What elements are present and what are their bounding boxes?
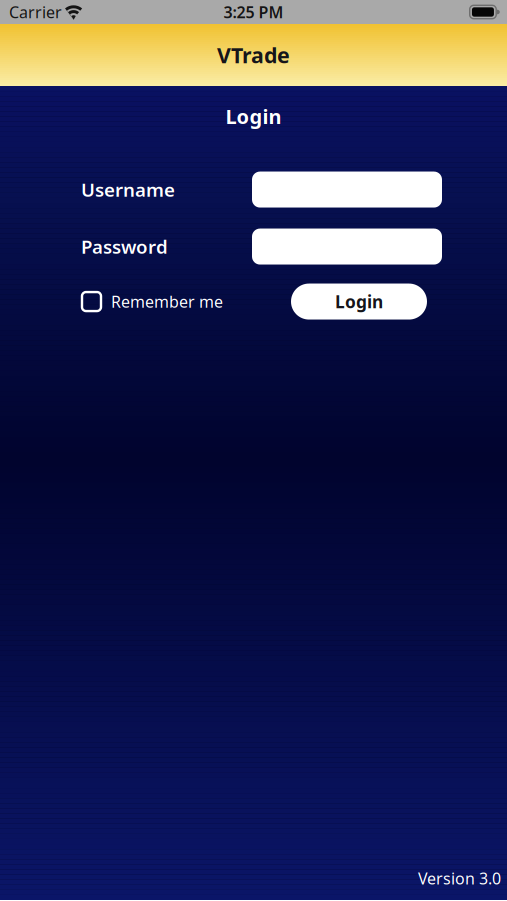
- staticText: Password: [81, 234, 168, 259]
- staticText: Carrier: [9, 1, 62, 23]
- staticText: Login: [335, 290, 383, 313]
- button[interactable]: Username: [252, 172, 442, 208]
- staticText: Login: [225, 103, 281, 130]
- button[interactable]: Password: [252, 229, 442, 265]
- staticText: 3:25 PM: [223, 1, 283, 23]
- staticText: Username: [81, 177, 175, 202]
- staticText: Remember me: [111, 291, 223, 312]
- staticText: VTrade: [217, 41, 290, 69]
- button[interactable]: Remember me: [82, 291, 223, 312]
- button[interactable]: Login: [291, 284, 427, 320]
- staticText: Version 3.0: [418, 868, 501, 889]
